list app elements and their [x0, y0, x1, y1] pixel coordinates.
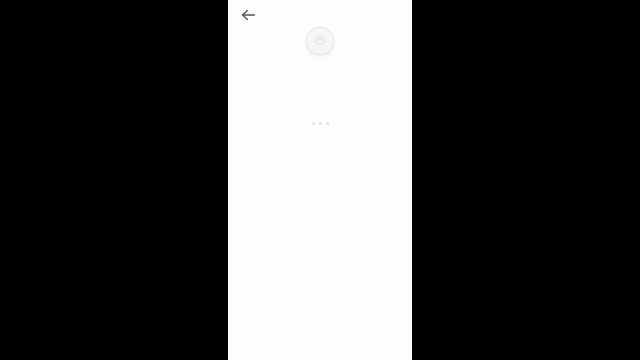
button[interactable]: Back — [234, 1, 262, 29]
